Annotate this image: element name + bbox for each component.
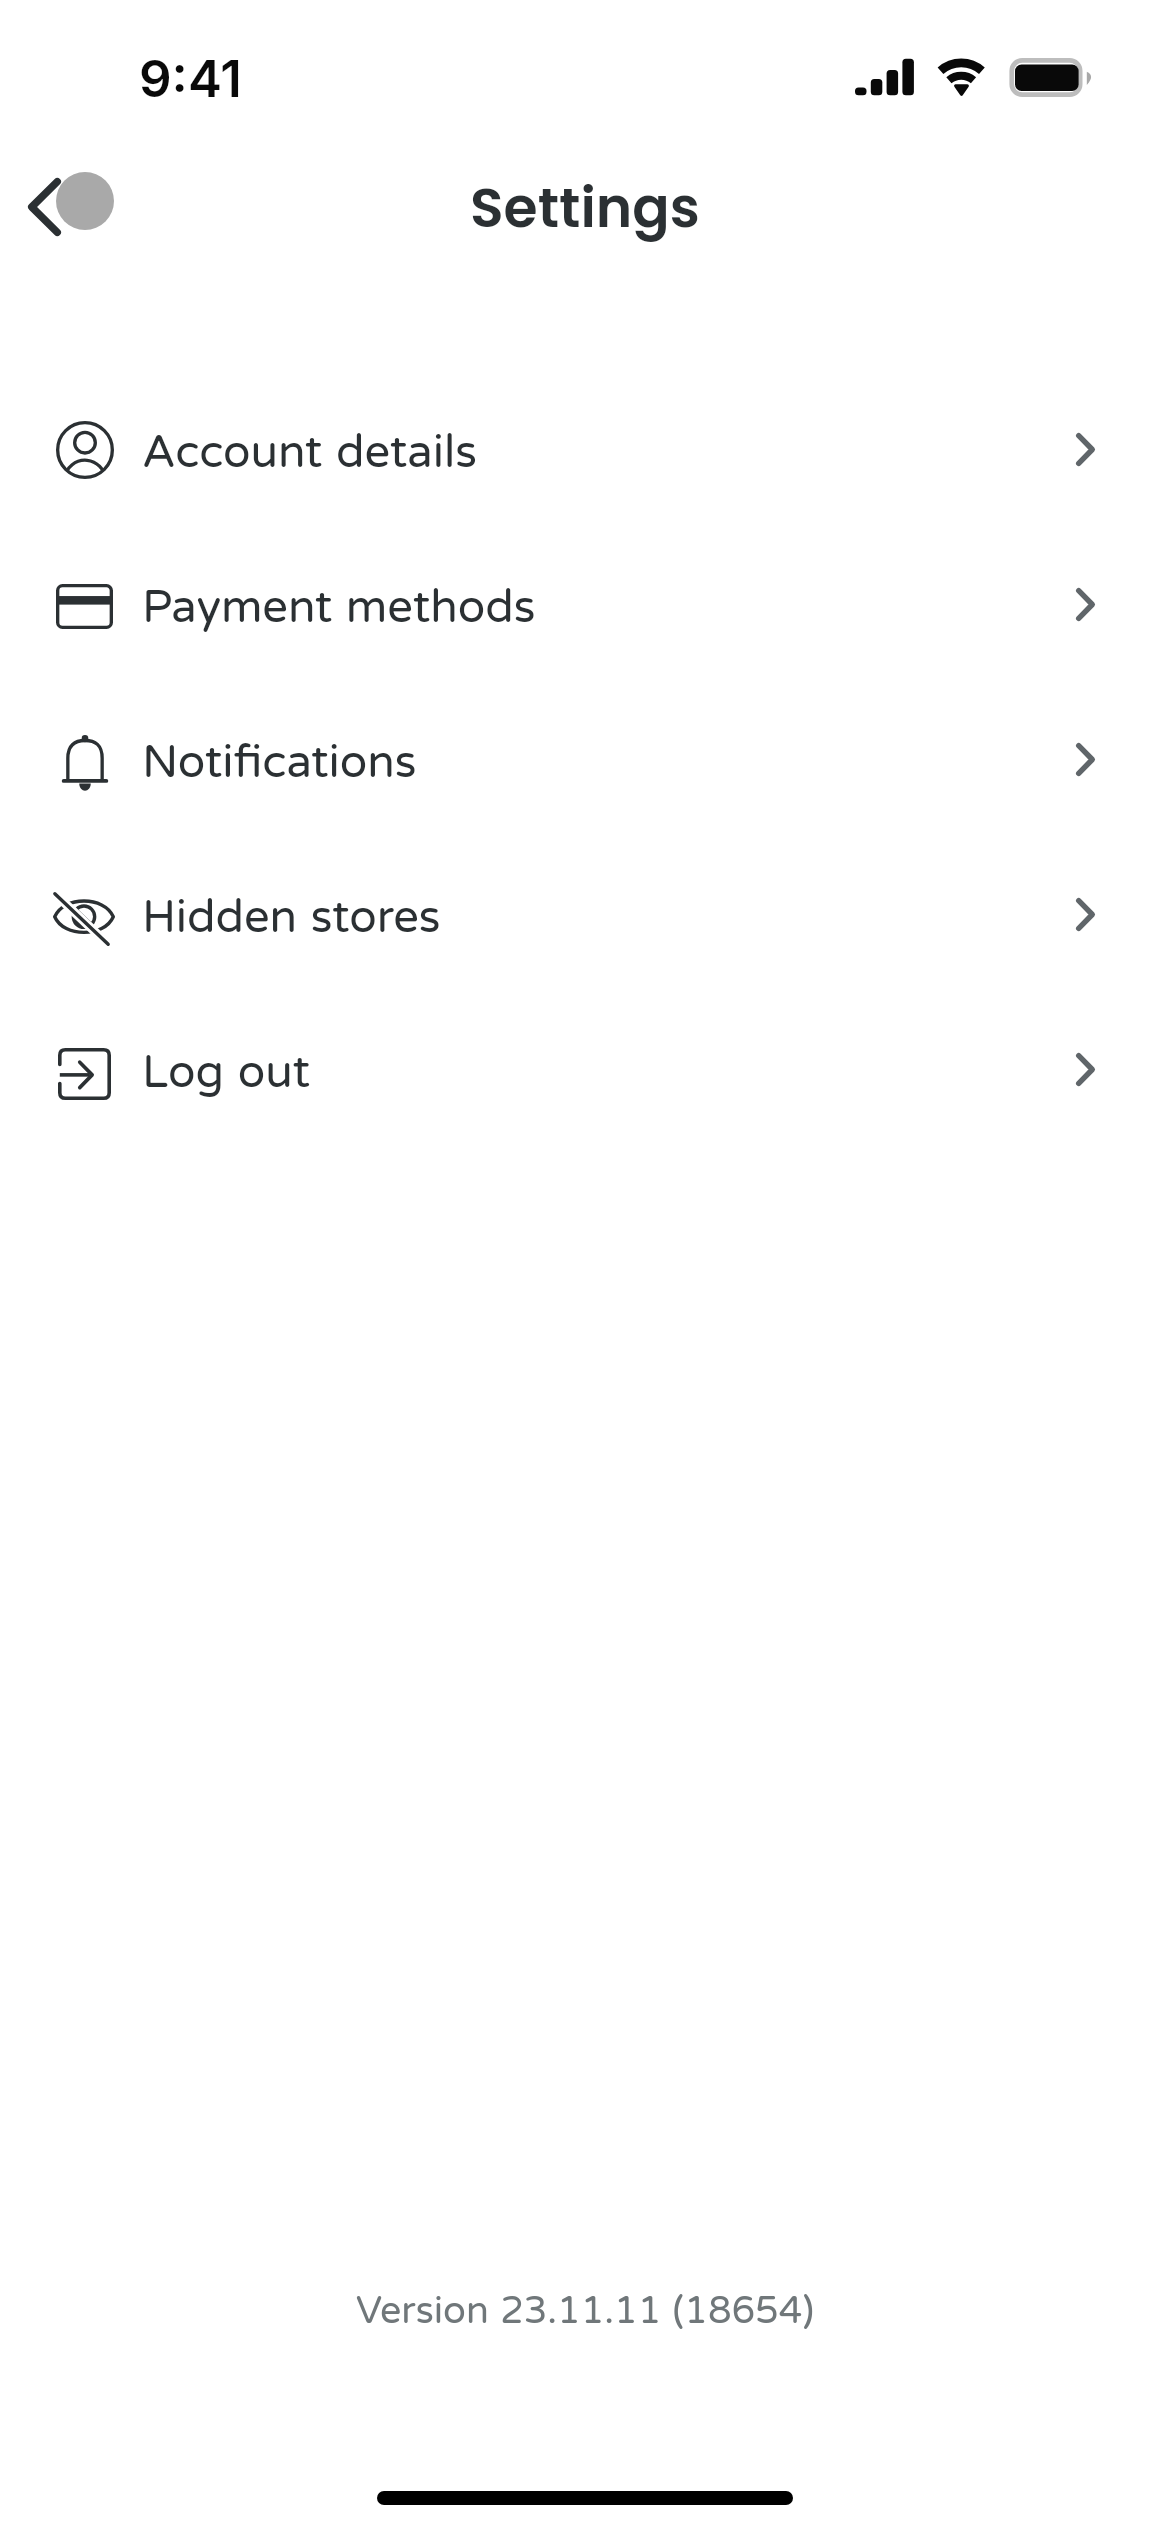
- staticText: 9:41: [139, 48, 242, 110]
- staticText: Account details: [142, 424, 477, 476]
- staticText: Notifications: [142, 734, 417, 786]
- staticText: Version 23.11.11 (18654): [0, 2288, 1170, 2331]
- staticText: Payment methods: [142, 579, 536, 631]
- button[interactable]: Back: [10, 155, 136, 255]
- button[interactable]: Notifications: [0, 682, 1170, 837]
- staticText: Hidden stores: [142, 889, 441, 941]
- button[interactable]: Account details: [0, 372, 1170, 527]
- staticText: Log out: [142, 1044, 310, 1096]
- button[interactable]: Payment methods: [0, 527, 1170, 682]
- staticText: Settings: [470, 169, 700, 246]
- button[interactable]: Log out: [0, 992, 1170, 1147]
- button[interactable]: Hidden stores: [0, 837, 1170, 992]
